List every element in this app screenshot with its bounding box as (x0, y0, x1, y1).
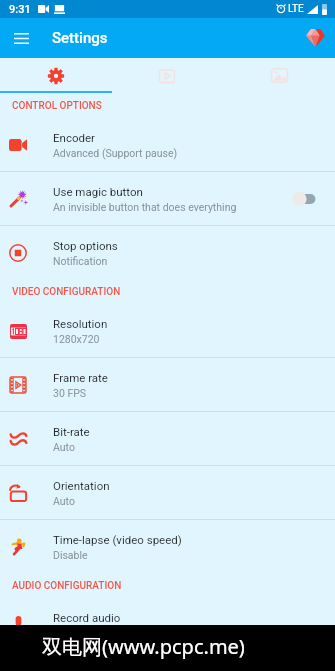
button[interactable]: Toggle magic button (289, 188, 325, 210)
staticText: Notification (53, 255, 108, 267)
staticText: Encoder (53, 131, 95, 144)
staticText: Enabled (53, 627, 91, 639)
staticText: Orientation (53, 479, 110, 492)
staticText: Use magic button (53, 185, 143, 198)
staticText: Time-lapse (video speed) (53, 533, 182, 546)
staticText: Resolution (53, 317, 108, 330)
staticText: Settings (52, 29, 108, 47)
button[interactable]: Premium (301, 24, 329, 52)
staticText: Auto (53, 495, 75, 507)
staticText: Stop options (53, 239, 118, 252)
staticText: An invisible button that does everything (53, 201, 237, 213)
button[interactable]: Orientation (0, 466, 335, 519)
button[interactable]: Open navigation drawer (6, 23, 36, 53)
staticText: 9:31 (9, 3, 31, 16)
staticText: 双电网(www.pcpc.me) (42, 633, 245, 660)
staticText: LTE (288, 3, 304, 15)
button[interactable]: Settings tab (0, 58, 111, 93)
staticText: 1280x720 (53, 333, 100, 345)
staticText: Frame rate (53, 371, 108, 384)
button[interactable]: Frame rate (0, 358, 335, 411)
button[interactable]: Encoder (0, 118, 335, 171)
staticText: Advanced (Support pause) (53, 147, 178, 159)
staticText: Record audio (53, 611, 121, 624)
button[interactable]: Stop options (0, 226, 335, 279)
staticText: Bit-rate (53, 425, 90, 438)
button[interactable]: Bit-rate (0, 412, 335, 465)
staticText: Disable (53, 549, 88, 561)
staticText: Auto (53, 441, 75, 453)
staticText: VIDEO CONFIGURATION (12, 286, 121, 298)
button[interactable]: Use magic button (0, 172, 335, 225)
button[interactable]: Time-lapse (video speed) (0, 520, 335, 573)
staticText: AUDIO CONFIGURATION (12, 580, 122, 592)
staticText: CONTROL OPTIONS (12, 100, 102, 112)
button[interactable]: Record audio (0, 598, 335, 651)
staticText: 30 FPS (53, 387, 87, 399)
button[interactable]: Resolution (0, 304, 335, 357)
button[interactable]: Images tab (223, 58, 335, 93)
button[interactable]: Videos tab (111, 58, 223, 93)
